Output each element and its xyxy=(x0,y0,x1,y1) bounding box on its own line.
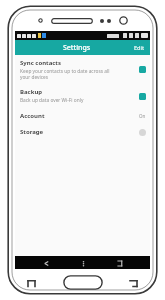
staticText: Edit xyxy=(134,44,145,51)
staticText: Storage xyxy=(20,128,44,136)
button[interactable]: Recents xyxy=(27,278,36,287)
staticText: Settings xyxy=(63,43,91,53)
button[interactable]: Back xyxy=(129,278,138,287)
staticText: Keep your contacts up to date across all… xyxy=(20,68,110,80)
staticText: On xyxy=(139,113,146,119)
button[interactable]: Toggle Sync contacts xyxy=(139,66,146,73)
button[interactable]: Recents xyxy=(114,258,124,268)
button[interactable]: Home xyxy=(63,275,103,290)
staticText: Back up data over Wi-Fi only xyxy=(20,97,84,104)
button[interactable]: Storage xyxy=(15,124,150,140)
button[interactable]: Sync contacts xyxy=(15,55,150,84)
staticText: Account xyxy=(20,112,45,120)
button[interactable]: Toggle Storage xyxy=(139,129,146,136)
button[interactable]: Backup xyxy=(15,84,150,108)
staticText: Sync contacts xyxy=(20,59,61,67)
button[interactable]: Account xyxy=(15,108,150,124)
button[interactable]: Back xyxy=(41,258,51,268)
staticText: Backup xyxy=(20,88,43,96)
button[interactable]: Home xyxy=(78,258,88,268)
button[interactable]: Edit xyxy=(132,43,147,52)
button[interactable]: Toggle Backup xyxy=(139,93,146,100)
